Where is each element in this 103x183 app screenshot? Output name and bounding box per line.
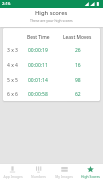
staticText: 6 x 6	[7, 91, 18, 98]
staticText: 00:01:14	[28, 77, 48, 84]
staticText: 00:00:19	[28, 47, 48, 54]
staticText: High Scores	[81, 174, 100, 179]
staticText: 3 x 3	[7, 47, 18, 54]
staticText: These are your high scores	[30, 18, 73, 23]
button[interactable]: 5 x 5	[3, 73, 100, 88]
staticText: 98	[75, 77, 81, 84]
staticText: Least Moves	[63, 34, 92, 41]
button[interactable]: 4 x 4	[3, 58, 100, 73]
button[interactable]: 3 x 3	[3, 43, 100, 58]
button[interactable]: 6 x 6	[3, 88, 100, 101]
staticText: 2:16	[2, 1, 11, 7]
staticText: 26	[75, 47, 81, 54]
staticText: 16	[75, 62, 81, 69]
staticText: Numbers	[31, 174, 46, 179]
staticText: My Images	[55, 174, 73, 179]
staticText: 62	[75, 91, 81, 98]
staticText: 5 x 5	[7, 77, 18, 84]
staticText: 00:00:58	[28, 91, 48, 98]
staticText: App Images	[3, 174, 23, 179]
button[interactable]: App Images	[0, 164, 25, 180]
staticText: 4 x 4	[7, 62, 18, 69]
staticText: 00:00:11	[28, 62, 48, 69]
staticText: High scores	[35, 9, 68, 17]
button[interactable]: High Scores	[77, 164, 103, 180]
staticText: Best Time	[27, 34, 50, 41]
button[interactable]: Numbers	[25, 164, 51, 180]
button[interactable]: My Images	[51, 164, 77, 180]
